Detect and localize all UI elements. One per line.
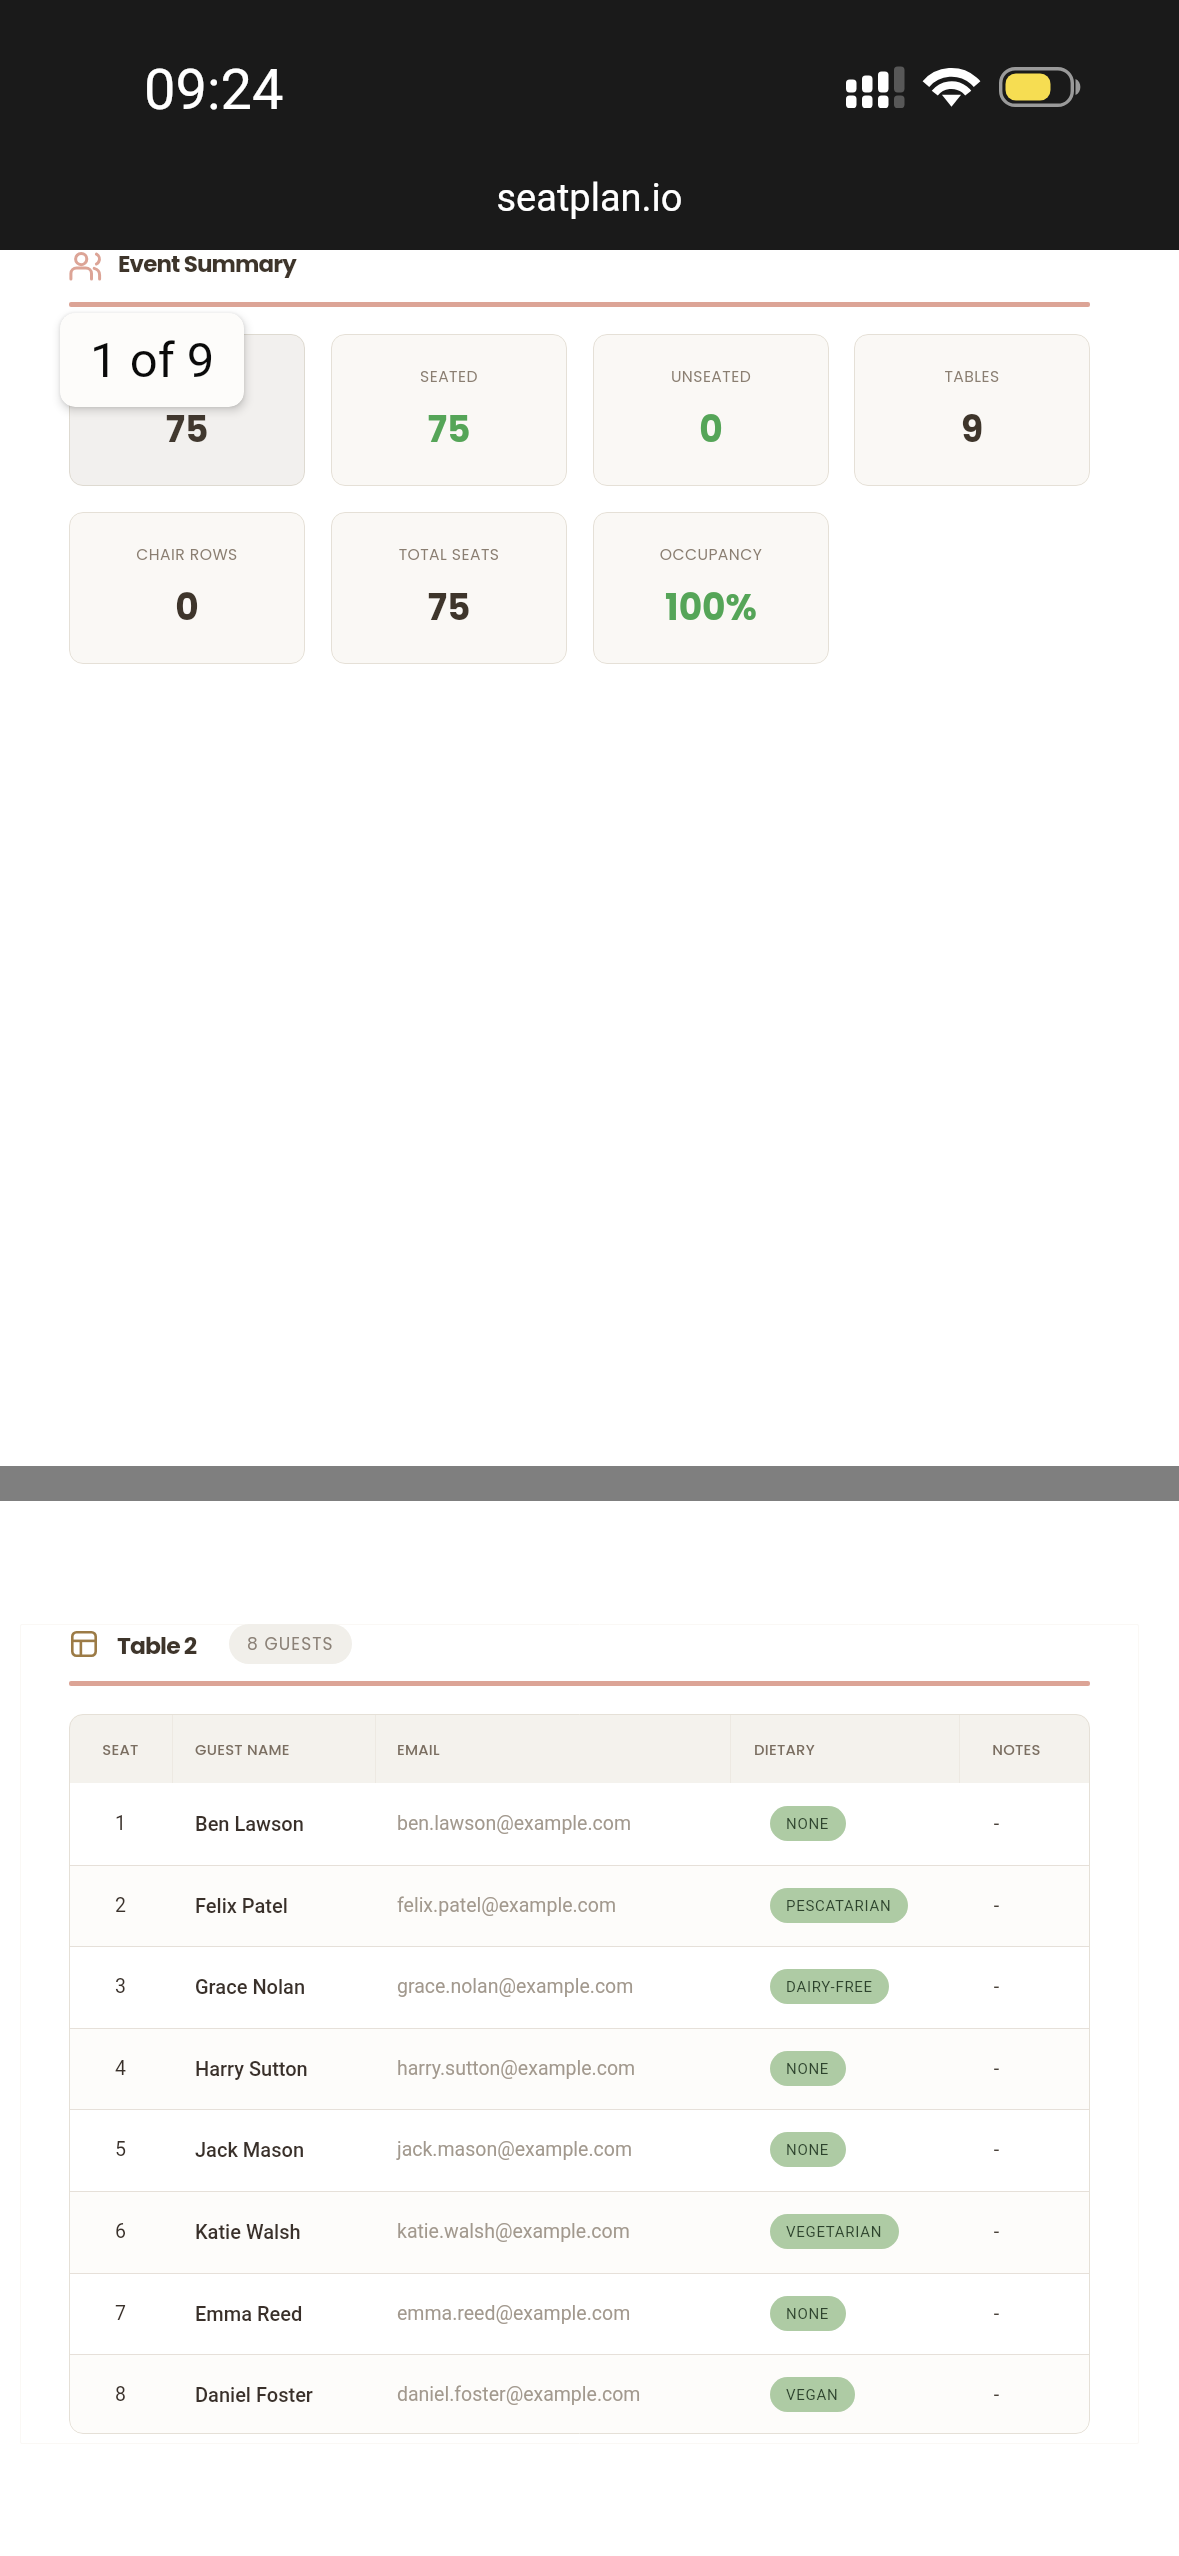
button[interactable]: TOTAL SEATS: [331, 512, 567, 664]
staticText: emma.reed@example.com: [397, 2302, 631, 2325]
staticText: felix.patel@example.com: [397, 1894, 617, 1917]
button[interactable]: 6: [69, 2191, 1090, 2273]
staticText: Jack Mason: [195, 2138, 305, 2161]
button[interactable]: 1: [69, 1783, 1090, 1865]
staticText: Event Summary: [118, 248, 297, 280]
staticText: -: [931, 2220, 1062, 2243]
staticText: SEAT: [69, 1739, 172, 1760]
staticText: 2: [69, 1894, 172, 1917]
staticText: SEATED: [331, 366, 567, 388]
button[interactable]: 3: [69, 1946, 1090, 2028]
staticText: -: [931, 1812, 1062, 1835]
staticText: -: [931, 2302, 1062, 2325]
staticText: jack.mason@example.com: [397, 2138, 632, 2161]
staticText: Felix Patel: [195, 1894, 288, 1917]
button[interactable]: 1 of 9: [60, 313, 244, 407]
staticText: VEGETARIAN: [786, 2223, 883, 2241]
staticText: 100%: [593, 582, 829, 632]
staticText: -: [931, 2057, 1062, 2080]
staticText: 09:24: [144, 57, 284, 123]
button[interactable]: OCCUPANCY: [593, 512, 829, 664]
staticText: grace.nolan@example.com: [397, 1975, 634, 1998]
staticText: GUESTS: [69, 366, 305, 388]
button[interactable]: 8 GUESTS: [229, 1624, 352, 1664]
staticText: TOTAL SEATS: [331, 544, 567, 566]
staticText: Grace Nolan: [195, 1975, 306, 1998]
staticText: NOTES: [951, 1739, 1082, 1760]
other: Wi-Fi: [926, 68, 977, 107]
staticText: ben.lawson@example.com: [397, 1812, 631, 1835]
staticText: 7: [69, 2302, 172, 2325]
staticText: 3: [69, 1975, 172, 1998]
button[interactable]: 7: [69, 2273, 1090, 2355]
button[interactable]: 5: [69, 2109, 1090, 2191]
other: Battery: [999, 67, 1083, 107]
button[interactable]: TABLES: [854, 334, 1090, 486]
staticText: UNSEATED: [593, 366, 829, 388]
staticText: DIETARY: [754, 1739, 815, 1760]
button[interactable]: GUESTS: [69, 334, 305, 486]
button[interactable]: CHAIR ROWS: [69, 512, 305, 664]
button[interactable]: UNSEATED: [593, 334, 829, 486]
staticText: 0: [69, 582, 305, 632]
button[interactable]: 8: [69, 2354, 1090, 2434]
staticText: 75: [69, 404, 305, 454]
staticText: -: [931, 1975, 1062, 1998]
button[interactable]: 2: [69, 1865, 1090, 1947]
staticText: NONE: [786, 1815, 830, 1833]
staticText: daniel.foster@example.com: [397, 2383, 641, 2406]
other: Mobile signal: [846, 66, 908, 110]
button[interactable]: SEATED: [331, 334, 567, 486]
staticText: harry.sutton@example.com: [397, 2057, 636, 2080]
staticText: seatplan.io: [0, 176, 1179, 221]
staticText: DAIRY-FREE: [786, 1978, 873, 1996]
staticText: 0: [593, 404, 829, 454]
staticText: 1 of 9: [90, 332, 215, 389]
staticText: 8 GUESTS: [247, 1632, 334, 1656]
staticText: VEGAN: [786, 2386, 839, 2404]
staticText: -: [931, 1894, 1062, 1917]
staticText: PESCATARIAN: [786, 1897, 892, 1915]
staticText: 6: [69, 2220, 172, 2243]
staticText: Ben Lawson: [195, 1812, 304, 1835]
staticText: 5: [69, 2138, 172, 2161]
staticText: Table 2: [117, 1629, 197, 1662]
staticText: GUEST NAME: [195, 1739, 290, 1760]
staticText: katie.walsh@example.com: [397, 2220, 630, 2243]
staticText: Harry Sutton: [195, 2057, 308, 2080]
staticText: 1: [69, 1812, 172, 1835]
staticText: OCCUPANCY: [593, 544, 829, 566]
staticText: CHAIR ROWS: [69, 544, 305, 566]
staticText: NONE: [786, 2141, 830, 2159]
staticText: Katie Walsh: [195, 2220, 301, 2243]
staticText: NONE: [786, 2305, 830, 2323]
staticText: -: [931, 2383, 1062, 2406]
staticText: Emma Reed: [195, 2302, 303, 2325]
staticText: -: [931, 2138, 1062, 2161]
button[interactable]: 4: [69, 2028, 1090, 2110]
staticText: TABLES: [854, 366, 1090, 388]
staticText: 9: [854, 404, 1090, 454]
staticText: 4: [69, 2057, 172, 2080]
staticText: Daniel Foster: [195, 2383, 313, 2406]
staticText: NONE: [786, 2060, 830, 2078]
staticText: 75: [331, 582, 567, 632]
staticText: 8: [69, 2383, 172, 2406]
staticText: EMAIL: [397, 1739, 440, 1760]
staticText: 75: [331, 404, 567, 454]
